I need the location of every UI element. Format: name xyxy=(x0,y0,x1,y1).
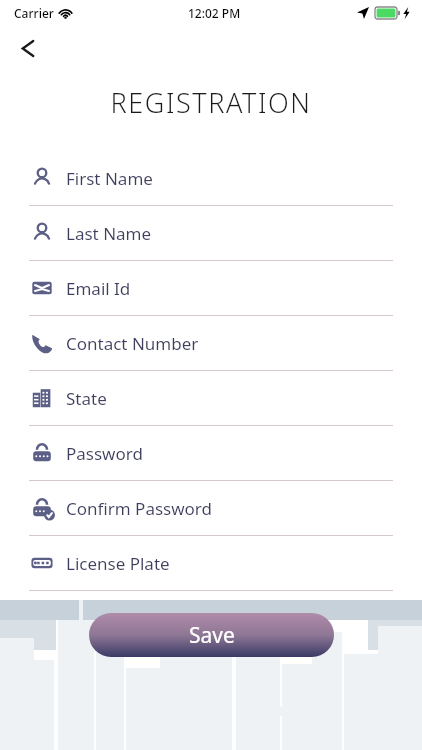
button[interactable]: Confirm Password xyxy=(29,481,393,536)
staticText: State xyxy=(66,387,107,410)
staticText: Email Id xyxy=(66,277,131,300)
staticText: Save xyxy=(189,621,235,650)
button[interactable]: State xyxy=(29,371,393,426)
button[interactable]: Back xyxy=(6,26,50,70)
button[interactable]: Contact Number xyxy=(29,316,393,371)
staticText: Last Name xyxy=(66,222,152,245)
staticText: 12:02 PM xyxy=(188,5,241,21)
staticText: Carrier xyxy=(14,5,54,21)
button[interactable]: Email Id xyxy=(29,261,393,316)
staticText: Contact Number xyxy=(66,332,199,355)
button[interactable]: Save xyxy=(89,613,334,657)
button[interactable]: First Name xyxy=(29,151,393,206)
staticText: REGISTRATION xyxy=(0,84,422,121)
button[interactable]: License Plate xyxy=(29,536,393,591)
staticText: Password xyxy=(66,442,143,465)
button[interactable]: Last Name xyxy=(29,206,393,261)
button[interactable]: Password xyxy=(29,426,393,481)
staticText: License Plate xyxy=(66,552,170,575)
staticText: First Name xyxy=(66,167,153,190)
staticText: Confirm Password xyxy=(66,497,212,520)
